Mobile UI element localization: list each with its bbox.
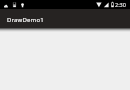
staticText: DrawDemo1 [7, 16, 44, 24]
button[interactable]: DrawDemo1 [0, 9, 130, 28]
other: Status icons: cloud upload, save, pinned… [0, 0, 130, 9]
staticText: 2:30 [115, 1, 126, 8]
